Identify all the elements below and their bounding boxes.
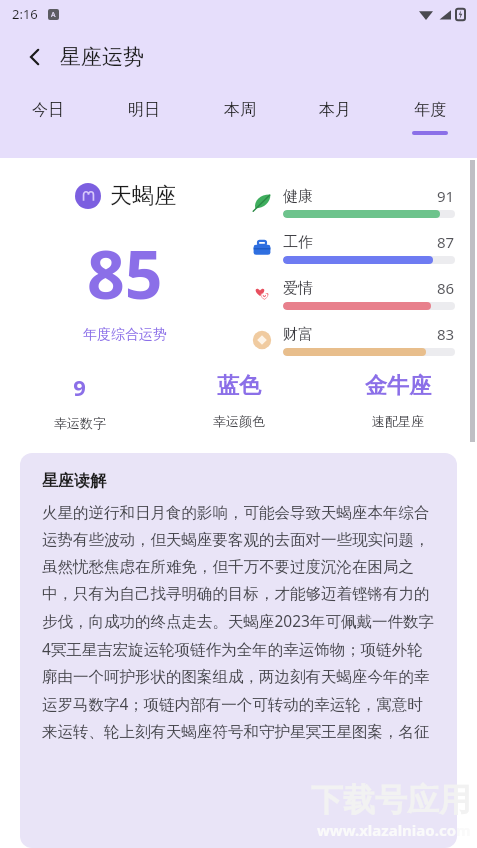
staticText: 本周 — [224, 100, 256, 120]
staticText: 85 — [87, 228, 163, 318]
button[interactable]: 9 — [0, 372, 159, 431]
button[interactable]: Back — [18, 40, 52, 74]
staticText: 91 — [437, 186, 455, 206]
staticText: 年度综合运势 — [83, 326, 167, 344]
staticText: A — [51, 10, 56, 20]
button[interactable]: 蓝色 — [159, 372, 318, 429]
staticText: 2:16 — [12, 5, 38, 23]
staticText: 幸运数字 — [54, 415, 106, 431]
staticText: 83 — [437, 324, 455, 344]
staticText: 下载号应用 — [311, 780, 471, 820]
button[interactable]: 金牛座 — [318, 372, 477, 429]
staticText: 火星的逆行和日月食的影响，可能会导致天蝎座本年综合运势有些波动，但天蝎座要客观的… — [42, 503, 435, 742]
button[interactable]: 本周 — [192, 94, 287, 146]
staticText: 工作 — [283, 233, 313, 252]
staticText: 金牛座 — [365, 372, 431, 400]
staticText: www.xlazalniao.com — [317, 820, 471, 840]
staticText: 本月 — [319, 100, 351, 120]
staticText: 9 — [73, 372, 86, 402]
staticText: 健康 — [283, 187, 313, 206]
staticText: 年度 — [414, 100, 446, 120]
button[interactable]: 今日 — [0, 94, 96, 146]
staticText: 财富 — [283, 325, 313, 344]
staticText: 天蝎座 — [110, 182, 176, 210]
staticText: 明日 — [128, 100, 160, 120]
button[interactable]: 年度 — [382, 94, 477, 146]
button[interactable]: 本月 — [287, 94, 382, 146]
staticText: 爱情 — [283, 279, 313, 298]
staticText: 今日 — [32, 100, 64, 120]
staticText: 蓝色 — [217, 372, 261, 400]
button[interactable]: 明日 — [96, 94, 192, 146]
staticText: 星座读解 — [42, 471, 106, 491]
staticText: 86 — [437, 278, 455, 298]
staticText: 87 — [437, 232, 455, 252]
staticText: 速配星座 — [372, 413, 424, 429]
staticText: 星座运势 — [60, 44, 144, 70]
staticText: 幸运颜色 — [213, 413, 265, 429]
